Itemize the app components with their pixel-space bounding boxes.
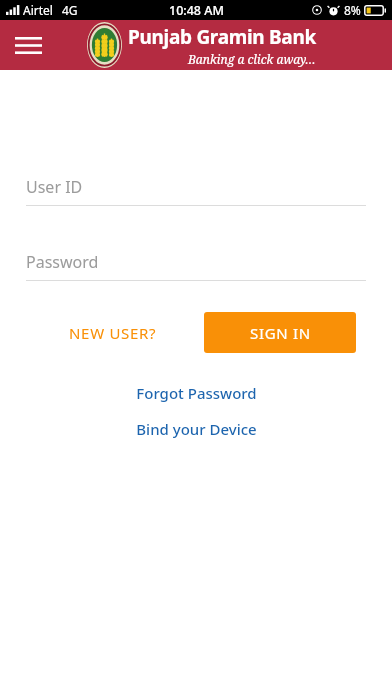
staticText: Airtel bbox=[23, 2, 53, 18]
staticText: Punjab Gramin Bank bbox=[128, 24, 316, 50]
staticText: Password bbox=[26, 251, 99, 273]
staticText: SIGN IN bbox=[250, 323, 311, 343]
button[interactable]: Forgot Password bbox=[0, 383, 392, 403]
staticText: 10:48 AM bbox=[169, 2, 224, 19]
staticText: NEW USER? bbox=[69, 323, 157, 343]
button[interactable]: Password bbox=[26, 251, 366, 281]
button[interactable]: Open navigation menu bbox=[6, 23, 50, 67]
button[interactable]: User ID bbox=[26, 176, 366, 206]
staticText: Forgot Password bbox=[136, 383, 257, 403]
button[interactable]: SIGN IN bbox=[204, 312, 356, 353]
staticText: Bind your Device bbox=[136, 419, 257, 439]
button[interactable]: Bind your Device bbox=[0, 419, 392, 439]
staticText: 8% bbox=[344, 2, 361, 18]
staticText: Banking a click away… bbox=[188, 51, 316, 67]
staticText: 4G bbox=[62, 2, 78, 18]
button[interactable]: NEW USER? bbox=[35, 312, 191, 353]
staticText: User ID bbox=[26, 176, 83, 198]
